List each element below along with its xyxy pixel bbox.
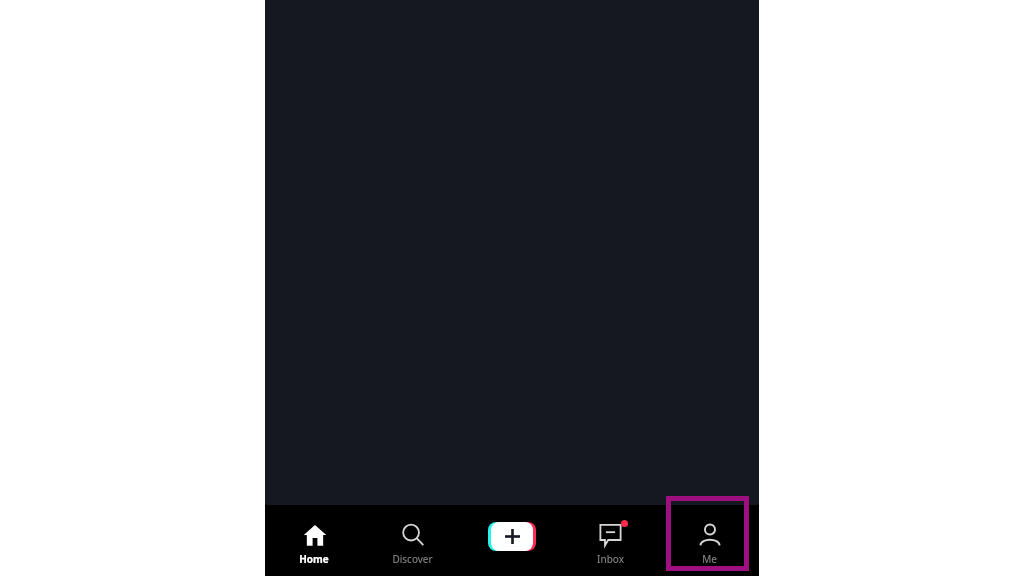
button[interactable]: Me bbox=[660, 505, 759, 576]
staticText: Home bbox=[299, 552, 329, 566]
staticText: Discover bbox=[392, 552, 433, 566]
button[interactable]: Discover bbox=[363, 505, 462, 576]
staticText: Inbox bbox=[597, 552, 624, 566]
staticText: Me bbox=[702, 552, 717, 566]
button[interactable]: Create bbox=[462, 505, 561, 576]
button[interactable]: Home bbox=[265, 505, 363, 576]
button[interactable]: Inbox bbox=[561, 505, 660, 576]
